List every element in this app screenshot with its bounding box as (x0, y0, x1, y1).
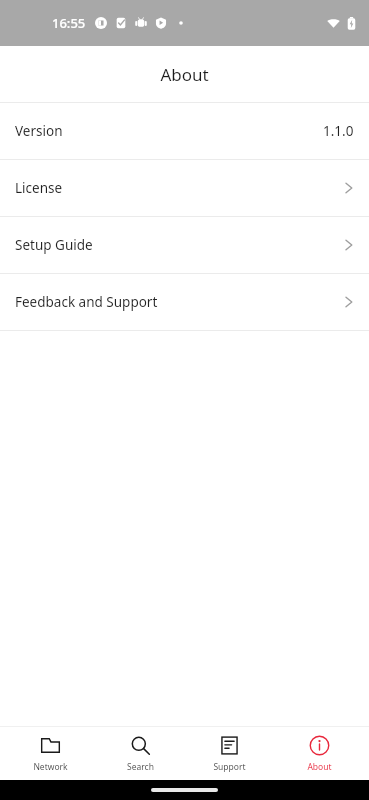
staticText: Support (213, 761, 246, 773)
staticText: Feedback and Support (15, 293, 158, 311)
button[interactable]: Setup Guide (0, 217, 369, 273)
staticText: Version (15, 122, 63, 140)
button[interactable]: About (279, 727, 359, 780)
button[interactable]: Search (100, 727, 180, 780)
button[interactable]: Feedback and Support (0, 274, 369, 330)
staticText: Network (33, 761, 68, 773)
staticText: 1.1.0 (323, 122, 354, 140)
staticText: Search (127, 761, 154, 773)
staticText: About (307, 761, 332, 773)
staticText: 16:55 (52, 14, 86, 32)
button[interactable]: Version (0, 103, 369, 159)
button[interactable]: License (0, 160, 369, 216)
button[interactable]: Support (189, 727, 269, 780)
staticText: License (15, 179, 63, 197)
button[interactable]: Network (10, 727, 90, 780)
staticText: About (160, 63, 209, 86)
staticText: Setup Guide (15, 236, 93, 254)
